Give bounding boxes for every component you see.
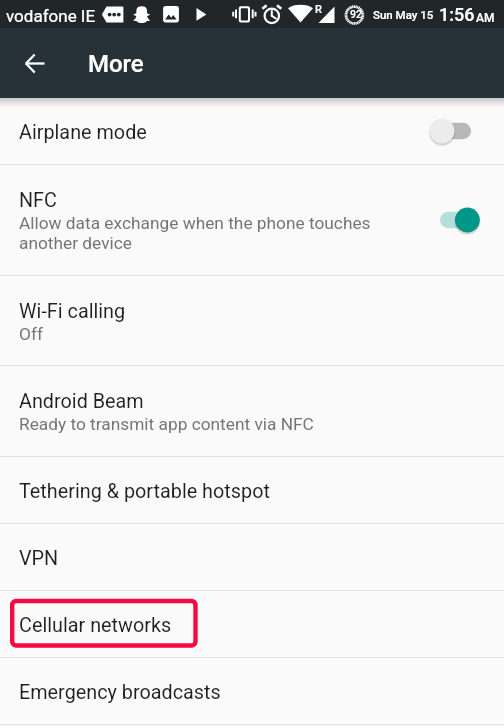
- staticText: Ready to transmit app content via NFC: [19, 414, 314, 434]
- staticText: More: [88, 50, 144, 78]
- staticText: 92: [350, 8, 362, 20]
- staticText: Android Beam: [19, 390, 144, 413]
- staticText: NFC: [19, 189, 57, 212]
- staticText: Wi-Fi calling: [19, 300, 126, 323]
- staticText: vodafone IE: [6, 6, 96, 26]
- staticText: Off: [19, 324, 43, 344]
- button[interactable]: Wi-Fi calling: [0, 276, 504, 365]
- staticText: Airplane mode: [19, 121, 147, 144]
- staticText: Sun May 15: [373, 8, 434, 21]
- staticText: Cellular networks: [19, 614, 172, 637]
- staticText: Tethering & portable hotspot: [19, 480, 270, 503]
- button[interactable]: Airplane mode: [0, 98, 504, 164]
- button[interactable]: Tethering & portable hotspot: [0, 457, 504, 523]
- button[interactable]: On: [424, 165, 484, 275]
- staticText: R: [315, 3, 322, 16]
- button[interactable]: Android Beam: [0, 366, 504, 456]
- staticText: Allow data exchange when the phone touch…: [19, 213, 371, 253]
- staticText: VPN: [19, 547, 59, 570]
- button[interactable]: Back: [6, 28, 63, 98]
- staticText: Emergency broadcasts: [19, 681, 221, 704]
- staticText: AM: [476, 11, 495, 25]
- button[interactable]: VPN: [0, 524, 504, 590]
- button[interactable]: Emergency broadcasts: [0, 658, 504, 724]
- staticText: 1:56: [439, 4, 475, 25]
- button[interactable]: Off: [424, 98, 484, 164]
- button[interactable]: Cellular networks: [0, 591, 504, 657]
- button[interactable]: NFC: [0, 165, 504, 275]
